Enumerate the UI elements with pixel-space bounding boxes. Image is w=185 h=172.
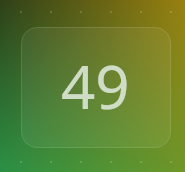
button[interactable]: 49 [21, 27, 171, 148]
staticText: 49 [61, 45, 130, 127]
